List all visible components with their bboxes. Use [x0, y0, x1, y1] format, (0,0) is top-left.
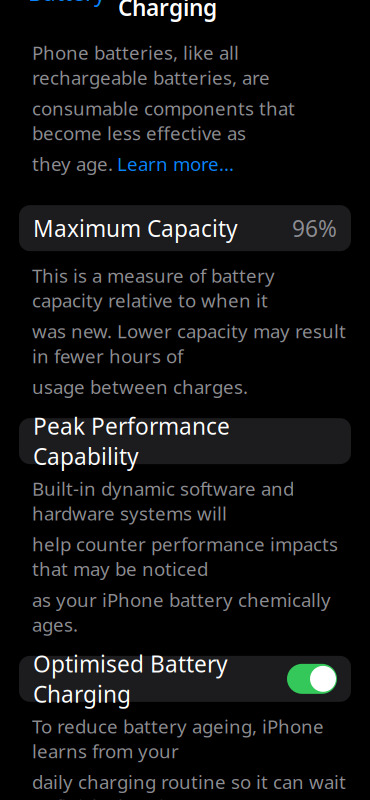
staticText: as your iPhone battery chemically ages.	[32, 587, 331, 637]
staticText: they age.	[32, 151, 113, 176]
staticText: Built-in dynamic software and hardware s…	[32, 476, 294, 526]
staticText: daily charging routine so it can wait to…	[32, 769, 346, 800]
button[interactable]: Peak Performance Capability	[19, 418, 351, 464]
staticText: help counter performance impacts that ma…	[32, 532, 338, 581]
button[interactable]: Learn more...	[117, 151, 234, 176]
button[interactable]: Maximum Capacity	[19, 205, 351, 251]
staticText: Phone batteries, like all rechargeable b…	[32, 40, 270, 90]
staticText: Learn more...	[117, 151, 234, 176]
staticText: Peak Performance Capability	[33, 411, 230, 471]
staticText: Maximum Capacity	[33, 213, 238, 243]
staticText: Battery Health & Charging	[118, 0, 300, 22]
button[interactable]: Optimised Battery Charging	[19, 656, 351, 702]
staticText: was new. Lower capacity may result in fe…	[32, 319, 346, 368]
staticText: To reduce battery ageing, iPhone learns …	[32, 714, 324, 763]
staticText: Battery	[28, 0, 106, 7]
button[interactable]: Battery	[0, 0, 106, 15]
staticText: usage between charges.	[32, 374, 248, 399]
staticText: Optimised Battery Charging	[33, 649, 228, 709]
staticText: 96%	[292, 213, 337, 243]
staticText: This is a measure of battery capacity re…	[32, 263, 275, 313]
staticText: consumable components that become less e…	[32, 96, 295, 145]
